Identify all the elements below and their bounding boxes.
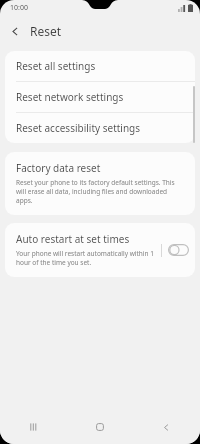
staticText: Auto restart at set times: [16, 232, 130, 246]
staticText: Your phone will restart automatically wi…: [16, 249, 157, 267]
staticText: 10:00: [10, 3, 28, 13]
button[interactable]: Home: [66, 410, 133, 444]
button[interactable]: Back: [133, 410, 200, 444]
button[interactable]: Back: [0, 16, 30, 46]
staticText: Reset your phone to its factory default …: [16, 178, 184, 205]
button[interactable]: Auto restart at set times: [5, 223, 161, 277]
button[interactable]: Reset all settings: [5, 51, 195, 81]
button[interactable]: Auto restart toggle: [162, 236, 195, 264]
button[interactable]: Reset network settings: [5, 82, 195, 112]
staticText: Reset: [30, 23, 62, 39]
staticText: Reset network settings: [16, 90, 124, 104]
staticText: Factory data reset: [16, 161, 101, 175]
staticText: Reset accessibility settings: [16, 121, 141, 135]
button[interactable]: Factory data reset: [5, 152, 195, 215]
staticText: Reset all settings: [16, 59, 96, 73]
button[interactable]: Recent apps: [0, 410, 66, 444]
button[interactable]: Reset accessibility settings: [5, 113, 195, 143]
